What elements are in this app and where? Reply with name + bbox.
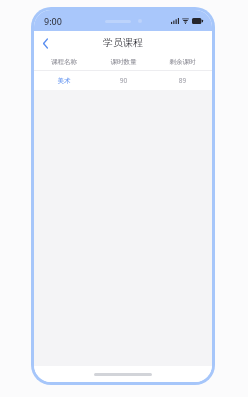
staticText: 剩余课时: [153, 58, 212, 66]
staticText: 90: [94, 76, 153, 85]
staticText: 课时数量: [94, 58, 153, 66]
button[interactable]: 美术: [34, 71, 212, 90]
staticText: 课程名称: [34, 58, 94, 66]
staticText: 89: [153, 76, 212, 85]
staticText: 9:00: [44, 15, 62, 27]
button[interactable]: Back: [34, 32, 56, 54]
staticText: 美术: [34, 77, 94, 85]
staticText: 学员课程: [103, 36, 143, 49]
